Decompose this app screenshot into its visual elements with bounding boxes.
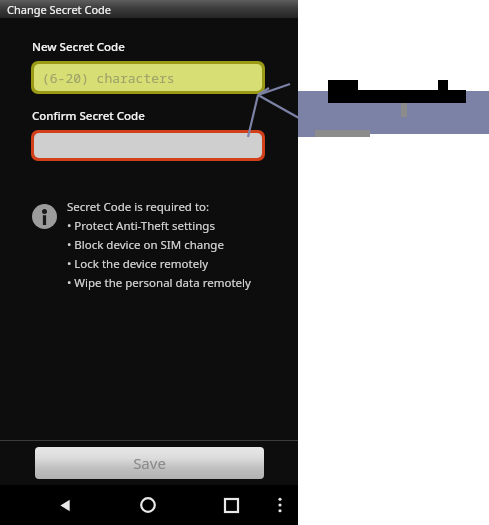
staticText: • Protect Anti-Theft settings	[67, 218, 215, 234]
staticText: Save	[133, 453, 166, 473]
staticText: • Block device on SIM change	[67, 237, 224, 253]
button[interactable]: (6-20) characters	[34, 64, 262, 91]
staticText: • Lock the device remotely	[67, 256, 209, 272]
staticText: • Wipe the personal data remotely	[67, 275, 251, 291]
staticText: New Secret Code	[32, 39, 125, 55]
button[interactable]: Back	[44, 485, 86, 525]
staticText: Change Secret Code	[7, 2, 112, 17]
button[interactable]	[34, 133, 262, 158]
button[interactable]: Home	[127, 485, 169, 525]
staticText: (6-20) characters	[42, 69, 175, 87]
staticText: Secret Code is required to:	[67, 199, 210, 215]
button[interactable]: Recent apps	[210, 485, 252, 525]
button[interactable]: More options	[264, 485, 296, 525]
button[interactable]: Save	[35, 447, 264, 479]
staticText: Confirm Secret Code	[32, 108, 145, 124]
